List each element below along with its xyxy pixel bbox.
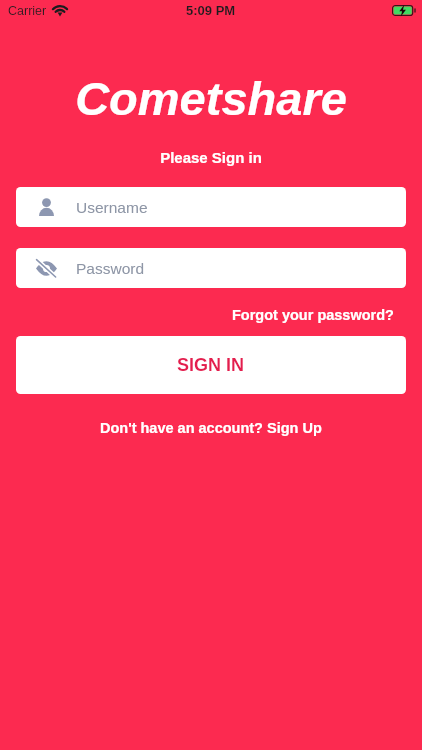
staticText: Password [76, 260, 145, 277]
staticText: Forgot your password? [232, 307, 394, 323]
button[interactable]: Show password [16, 248, 406, 288]
staticText: Please Sign in [0, 149, 422, 166]
other: Username [39, 198, 54, 216]
other: Battery charging [392, 5, 415, 16]
other: Show password [36, 261, 57, 276]
button[interactable]: Username [16, 187, 406, 227]
button[interactable]: Forgot your password? [218, 301, 422, 329]
staticText: Cometshare [0, 72, 422, 125]
other: Wi-Fi [52, 5, 68, 16]
staticText: Don't have an account? Sign Up [100, 420, 322, 436]
button[interactable]: Don't have an account? Sign Up [88, 414, 334, 442]
staticText: Username [76, 199, 148, 216]
staticText: 5:09 PM [186, 3, 236, 18]
staticText: SIGN IN [177, 355, 245, 375]
staticText: Carrier [8, 4, 47, 18]
button[interactable]: SIGN IN [16, 336, 406, 394]
